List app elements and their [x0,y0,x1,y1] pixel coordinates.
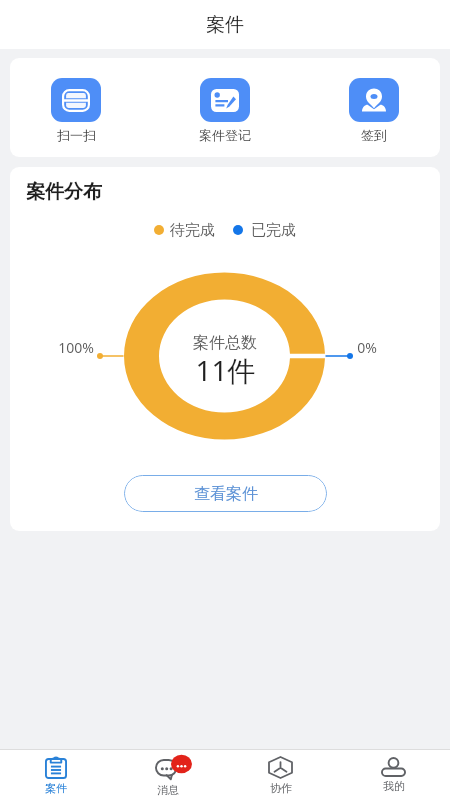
staticText: 100% [58,338,94,357]
staticText: 案件 [45,781,67,795]
staticText: 签到 [361,127,387,143]
staticText: 案件总数 [193,333,257,353]
button[interactable]: 签到 [349,58,399,143]
staticText: 已完成 [251,221,296,240]
button[interactable]: 案件登记 [199,58,251,143]
staticText: 查看案件 [194,484,258,504]
staticText: 扫一扫 [57,127,96,143]
staticText: 协作 [270,781,292,795]
staticText: 我的 [383,779,405,793]
staticText: 待完成 [170,221,215,240]
button[interactable]: 案件 [0,750,112,800]
button[interactable]: 查看案件 [124,475,327,512]
staticText: 案件分布 [26,180,102,204]
button[interactable]: 协作 [224,750,337,800]
button[interactable]: 我的 [337,750,450,800]
staticText: 0% [357,338,377,357]
staticText: 11件 [195,351,256,389]
button[interactable]: 消息 [112,750,224,800]
staticText: 案件 [206,13,244,37]
button[interactable]: 扫一扫 [51,58,101,143]
staticText: 案件登记 [199,127,251,143]
staticText: 消息 [157,783,179,797]
